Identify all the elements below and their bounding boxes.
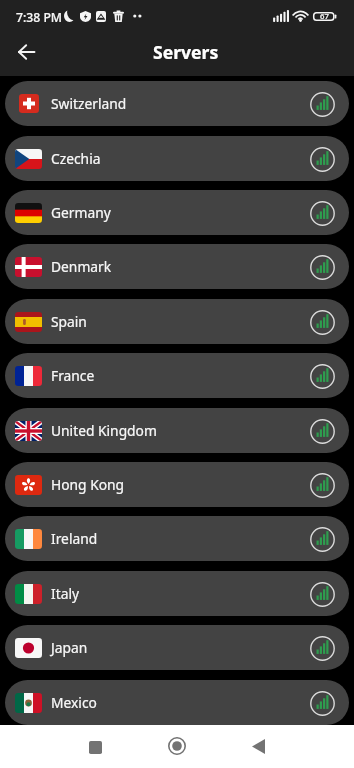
button[interactable]: Recent apps bbox=[75, 727, 116, 768]
button[interactable]: Signal strength for Switzerland bbox=[309, 91, 335, 117]
button[interactable]: Signal strength for Hong Kong bbox=[309, 472, 335, 498]
staticText: Czechia bbox=[51, 149, 101, 168]
button[interactable]: Home bbox=[156, 725, 198, 767]
button[interactable]: Hong Kong bbox=[5, 462, 349, 507]
staticText: Germany bbox=[51, 203, 111, 222]
button[interactable]: Back bbox=[10, 36, 42, 68]
button[interactable]: United Kingdom bbox=[5, 408, 349, 453]
button[interactable]: Spain bbox=[5, 299, 349, 344]
button[interactable]: Signal strength for Germany bbox=[309, 200, 335, 226]
button[interactable]: Japan bbox=[5, 625, 349, 670]
button[interactable]: Signal strength for France bbox=[309, 363, 335, 389]
staticText: Servers bbox=[153, 40, 219, 64]
button[interactable]: Signal strength for Mexico bbox=[309, 690, 335, 716]
staticText: France bbox=[51, 366, 95, 385]
button[interactable]: Switzerland bbox=[5, 81, 349, 126]
button[interactable]: Germany bbox=[5, 190, 349, 235]
button[interactable]: Signal strength for Japan bbox=[309, 635, 335, 661]
button[interactable]: Signal strength for Ireland bbox=[309, 526, 335, 552]
staticText: Mexico bbox=[51, 693, 97, 712]
staticText: Hong Kong bbox=[51, 475, 125, 494]
button[interactable]: Italy bbox=[5, 571, 349, 616]
staticText: Spain bbox=[51, 312, 87, 331]
button[interactable]: Signal strength for United Kingdom bbox=[309, 418, 335, 444]
button[interactable]: France bbox=[5, 353, 349, 398]
button[interactable]: Mexico bbox=[5, 680, 349, 725]
button[interactable]: Czechia bbox=[5, 136, 349, 181]
staticText: 67 bbox=[320, 11, 329, 22]
button[interactable]: Signal strength for Spain bbox=[309, 309, 335, 335]
button[interactable]: Ireland bbox=[5, 516, 349, 561]
button[interactable]: Signal strength for Czechia bbox=[309, 146, 335, 172]
button[interactable]: Back bbox=[237, 725, 279, 767]
staticText: Ireland bbox=[51, 529, 98, 548]
staticText: 7:38 PM bbox=[16, 9, 63, 26]
staticText: Japan bbox=[51, 638, 88, 657]
staticText: Italy bbox=[51, 584, 79, 603]
staticText: Switzerland bbox=[51, 94, 127, 113]
button[interactable]: Signal strength for Italy bbox=[309, 581, 335, 607]
button[interactable]: Signal strength for Denmark bbox=[309, 254, 335, 280]
staticText: Denmark bbox=[51, 257, 112, 276]
staticText: United Kingdom bbox=[51, 421, 157, 440]
button[interactable]: Denmark bbox=[5, 244, 349, 289]
